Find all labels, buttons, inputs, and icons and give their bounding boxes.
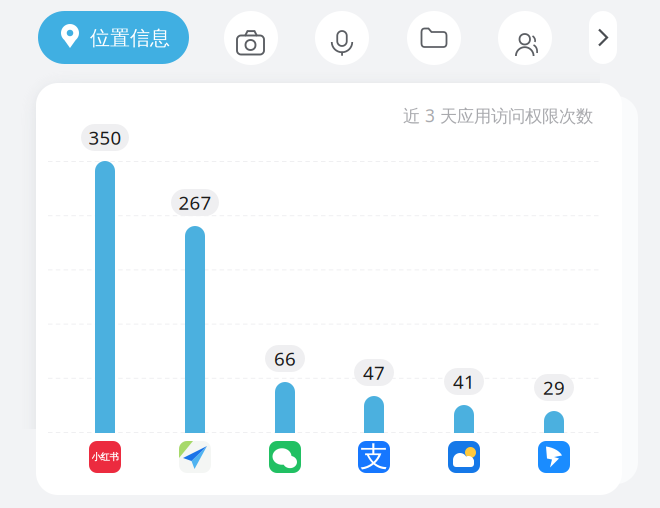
button[interactable]: Camera — [224, 11, 278, 65]
staticText: 29 — [543, 375, 565, 400]
button[interactable]: Microphone — [315, 11, 369, 65]
button[interactable]: Files — [407, 11, 461, 65]
staticText: 47 — [363, 360, 385, 385]
staticText: 位置信息 — [90, 26, 170, 50]
staticText: 66 — [274, 346, 296, 371]
staticText: 支 — [360, 440, 388, 474]
button[interactable]: Contacts — [498, 11, 552, 65]
button[interactable]: 位置信息 — [38, 11, 189, 64]
staticText: 267 — [178, 190, 211, 215]
button[interactable]: More — [589, 11, 617, 64]
staticText: 41 — [453, 369, 475, 394]
staticText: 小红书 — [91, 451, 118, 463]
staticText: 近 3 天应用访问权限次数 — [403, 104, 593, 127]
staticText: 350 — [88, 125, 121, 150]
